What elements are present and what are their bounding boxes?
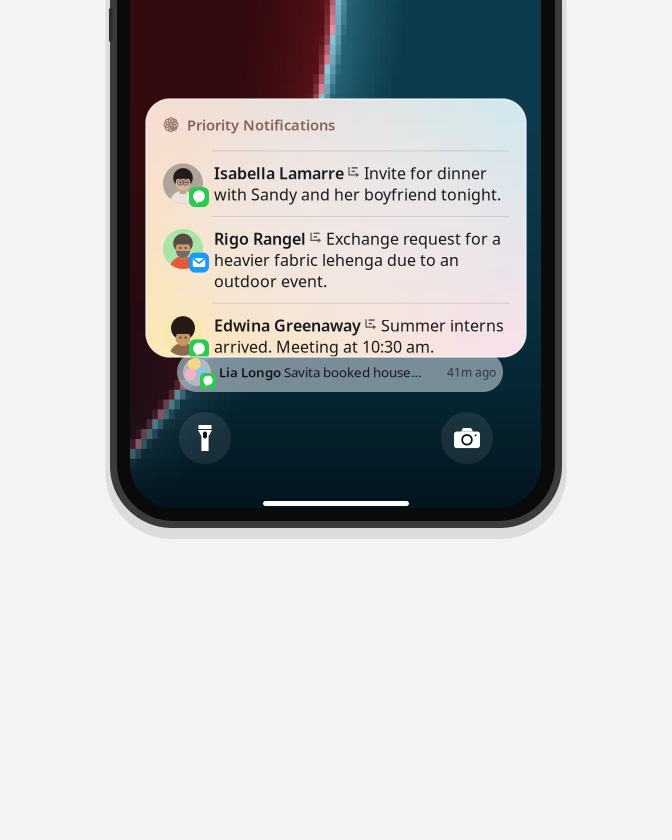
- staticText: Priority Notifications: [187, 115, 335, 134]
- staticText: Lia Longo Savita booked house…: [219, 363, 422, 381]
- staticText: 41m ago: [447, 364, 496, 380]
- staticText: Isabella Lamarre Invite for dinner with …: [214, 162, 501, 205]
- button[interactable]: Camera: [441, 412, 493, 464]
- staticText: Edwina Greenaway Summer interns arrived.…: [214, 315, 504, 357]
- staticText: Rigo Rangel Exchange request for a heavi…: [214, 228, 501, 292]
- button[interactable]: Flashlight: [179, 412, 231, 464]
